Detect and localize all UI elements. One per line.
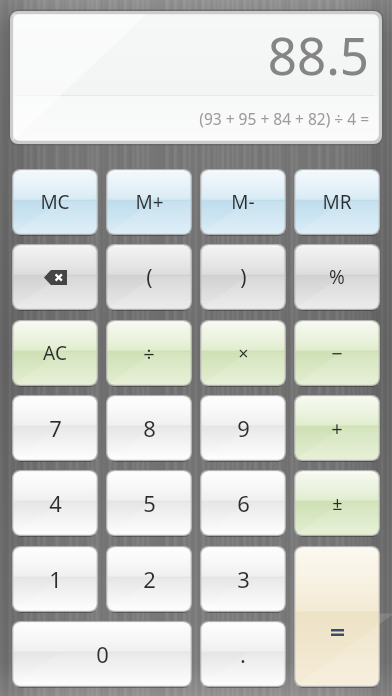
staticText: 88.5 [267,20,369,89]
staticText: ± [332,491,343,516]
button[interactable]: ÷ [106,320,192,386]
button[interactable]: ( [106,244,192,310]
staticText: MC [40,189,70,215]
staticText: ) [240,263,247,292]
staticText: 1 [49,564,62,594]
staticText: 8 [143,413,156,443]
button[interactable]: 0 [12,621,192,687]
staticText: 4 [49,488,62,518]
button[interactable]: M- [200,169,286,235]
button[interactable]: % [294,244,380,310]
button[interactable]: − [294,320,380,386]
button[interactable]: ) [200,244,286,310]
button[interactable]: Backspace [12,244,98,310]
button[interactable]: + [294,395,380,461]
button[interactable]: 2 [106,546,192,612]
staticText: (93 + 95 + 84 + 82) ÷ 4 = [199,108,369,129]
staticText: M- [231,189,255,215]
button[interactable]: M+ [106,169,192,235]
staticText: 2 [143,564,156,594]
staticText: . [240,639,246,669]
staticText: 5 [143,488,156,518]
button[interactable]: . [200,621,286,687]
staticText: + [331,415,343,442]
staticText: % [329,264,345,290]
staticText: 7 [49,413,62,443]
staticText: M+ [135,189,164,215]
button[interactable]: AC [12,320,98,386]
staticText: − [331,340,343,367]
staticText: 0 [96,639,109,669]
button[interactable]: Equals [294,546,380,687]
button[interactable]: 4 [12,470,98,536]
button[interactable]: MC [12,169,98,235]
button[interactable]: 6 [200,470,286,536]
staticText: 3 [237,564,250,594]
button[interactable]: × [200,320,286,386]
staticText: AC [43,340,67,366]
button[interactable]: 7 [12,395,98,461]
staticText: 9 [237,413,250,443]
button[interactable]: 9 [200,395,286,461]
staticText: MR [322,189,352,215]
button[interactable]: 5 [106,470,192,536]
staticText: × [238,341,249,366]
button[interactable]: ± [294,470,380,536]
staticText: ( [146,263,153,292]
button[interactable]: 8 [106,395,192,461]
staticText: ÷ [143,340,155,367]
button[interactable]: MR [294,169,380,235]
button[interactable]: 3 [200,546,286,612]
button[interactable]: 1 [12,546,98,612]
staticText: 6 [237,488,250,518]
